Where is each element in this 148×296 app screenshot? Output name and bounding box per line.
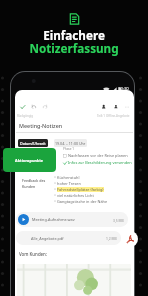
staticText: Küchenstuhl <box>57 175 80 180</box>
staticText: viel natürliches Licht <box>57 193 94 198</box>
staticText: Vom Kunden: <box>19 251 48 257</box>
button[interactable]: Aktionspunkte <box>3 148 56 172</box>
staticText: Meeting-Notizen <box>19 122 63 129</box>
staticText: Phase 1 <box>63 147 74 151</box>
button[interactable]: Alle_Angebote.pdf <box>16 231 121 245</box>
button[interactable]: Add collaborator <box>101 104 107 110</box>
button[interactable]: Redo <box>42 104 48 110</box>
staticText: Teilt 1 <box>97 114 105 118</box>
staticText: Meeting-Aufnahme.wav <box>32 217 75 222</box>
staticText: 1,2 MB <box>106 236 117 240</box>
staticText: 10:30 <box>118 86 129 92</box>
staticText: Rückgängig <box>17 114 34 118</box>
staticText: Gangtagstische in der Nähe <box>57 199 108 204</box>
staticText: 19.04. – 11:00 Uhr <box>55 141 86 146</box>
button[interactable]: Share <box>113 104 119 110</box>
staticText: Notizerfassung <box>29 40 119 56</box>
staticText: Infos zur Beschilderung versenden <box>68 160 132 165</box>
staticText: Alle_Angebote.pdf <box>31 236 64 241</box>
staticText: Datum/Uhrzeit <box>20 141 46 146</box>
button[interactable]: PDF attachment <box>122 231 138 247</box>
staticText: Nachfassen vor der Reise planen <box>68 153 128 158</box>
staticText: hoher Tresen <box>57 181 81 186</box>
button[interactable]: Meeting-Aufnahme.wav <box>16 212 128 227</box>
button[interactable]: Done <box>20 104 26 110</box>
button[interactable]: More options <box>124 104 130 110</box>
staticText: Feedback des Kunden <box>22 178 46 189</box>
button[interactable]: Undo <box>31 104 37 110</box>
staticText: Offline-Angebote <box>106 114 130 118</box>
staticText: Fahrradstellplätze (farbig) <box>57 187 104 192</box>
staticText: Einfachere <box>43 27 105 43</box>
staticText: 3,5 MB <box>113 218 124 222</box>
button[interactable]: Datum/Uhrzeit <box>18 139 48 147</box>
staticText: Aktionspunkte <box>15 158 44 163</box>
